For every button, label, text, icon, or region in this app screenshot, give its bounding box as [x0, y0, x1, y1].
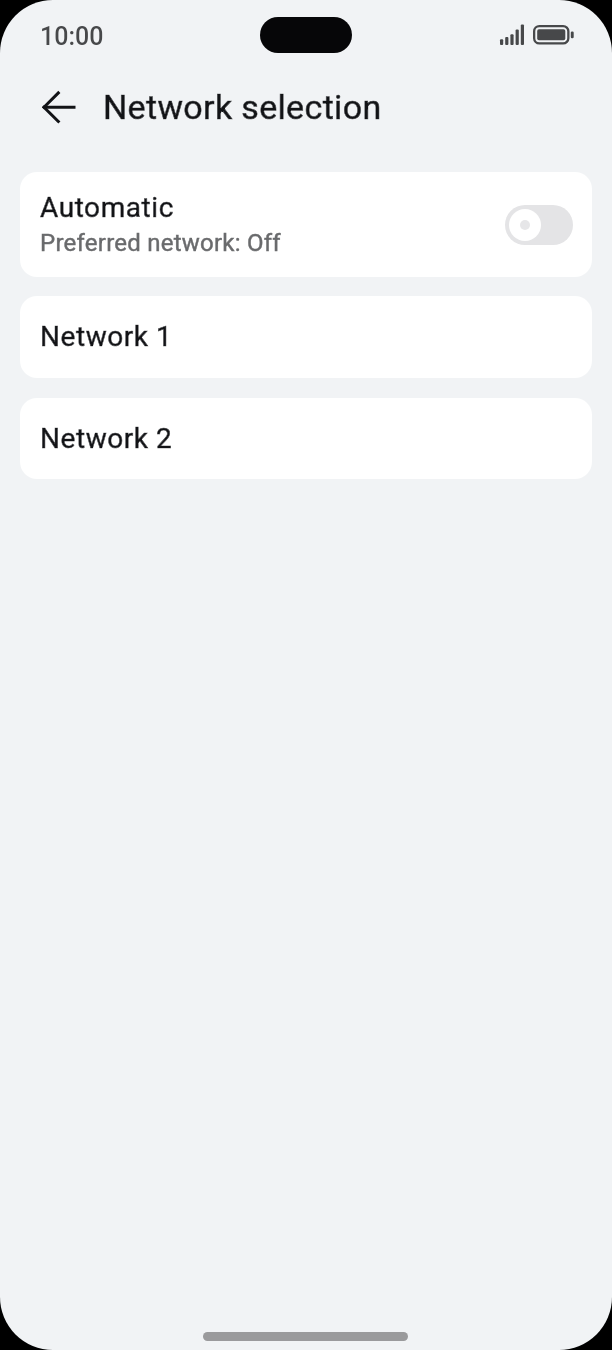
button[interactable]: Preferred network toggle: [505, 205, 573, 245]
button[interactable]: Back: [27, 75, 91, 139]
other: Mobile signal: [500, 24, 525, 45]
staticText: Preferred network: Off: [40, 229, 281, 257]
staticText: Network selection: [103, 87, 382, 127]
button[interactable]: Network 2: [20, 398, 592, 479]
staticText: Network 1: [40, 320, 173, 353]
staticText: Automatic: [40, 191, 174, 224]
staticText: Network 2: [40, 422, 173, 455]
staticText: Network selection: [103, 87, 382, 127]
button[interactable]: Network 1: [20, 296, 592, 378]
staticText: Automatic: [40, 191, 174, 224]
staticText: Preferred network: Off: [40, 229, 281, 257]
staticText: Network 1: [40, 320, 173, 353]
staticText: Network 2: [40, 422, 173, 455]
button[interactable]: Automatic: [20, 172, 592, 277]
other: Battery: [533, 25, 574, 45]
staticText: 10:00: [40, 22, 104, 51]
